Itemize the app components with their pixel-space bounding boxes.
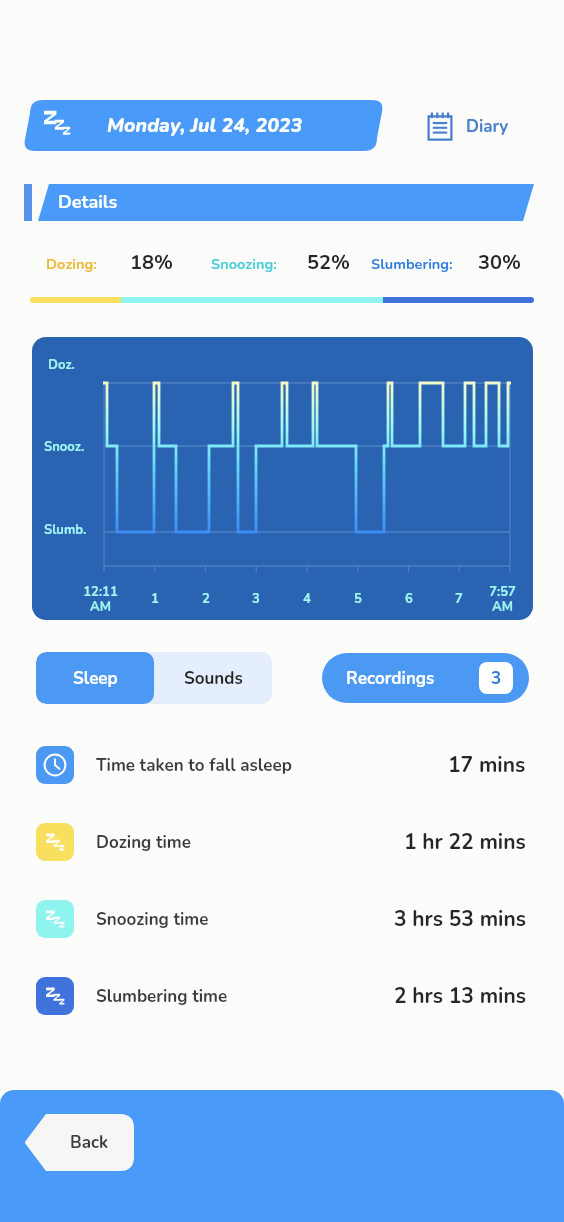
staticText: 2 hrs 13 mins xyxy=(394,982,526,1011)
staticText: Slumb. xyxy=(44,521,87,539)
button[interactable]: Sounds xyxy=(154,652,272,704)
staticText: 7:57 AM xyxy=(489,583,516,616)
staticText: 3 hrs 53 mins xyxy=(394,905,526,934)
staticText: Snooz. xyxy=(44,438,85,456)
staticText: 4 xyxy=(303,590,311,608)
button[interactable]: Snoozing time xyxy=(0,883,564,955)
staticText: 5 xyxy=(354,590,362,608)
staticText: 7 xyxy=(455,590,463,608)
staticText: 3 xyxy=(252,590,260,608)
button[interactable]: Sleep xyxy=(36,652,154,704)
staticText: Diary xyxy=(466,115,509,138)
button[interactable]: Diary xyxy=(425,108,509,144)
staticText: 18% xyxy=(130,249,173,276)
staticText: Slumbering: xyxy=(371,254,453,274)
button[interactable]: Time taken to fall asleep xyxy=(0,729,564,801)
staticText: 52% xyxy=(307,249,350,276)
staticText: 17 mins xyxy=(448,751,526,780)
staticText: 2 xyxy=(202,590,210,608)
staticText: 30% xyxy=(478,249,521,276)
staticText: Sleep xyxy=(73,667,118,690)
staticText: Time taken to fall asleep xyxy=(96,754,292,777)
staticText: 1 xyxy=(151,590,159,608)
button[interactable]: Dozing time xyxy=(0,806,564,878)
staticText: Details xyxy=(58,190,118,215)
staticText: Snoozing: xyxy=(211,254,277,274)
button[interactable]: Back xyxy=(24,1114,134,1171)
staticText: Dozing time xyxy=(96,831,191,854)
staticText: Dozing: xyxy=(46,254,97,274)
staticText: Back xyxy=(70,1131,109,1154)
staticText: Snoozing time xyxy=(96,908,209,931)
staticText: Recordings xyxy=(346,667,435,690)
staticText: 3 xyxy=(491,667,502,690)
staticText: Slumbering time xyxy=(96,985,228,1008)
staticText: 12:11 AM xyxy=(83,583,118,616)
staticText: 6 xyxy=(405,590,413,608)
staticText: 1 hr 22 mins xyxy=(404,828,526,857)
staticText: Doz. xyxy=(48,356,75,374)
button[interactable]: Recordings xyxy=(322,653,529,703)
staticText: Sounds xyxy=(184,667,243,690)
staticText: Monday, Jul 24, 2023 xyxy=(107,112,303,139)
button[interactable]: Monday, Jul 24, 2023 xyxy=(22,100,385,151)
button[interactable]: Slumbering time xyxy=(0,960,564,1032)
